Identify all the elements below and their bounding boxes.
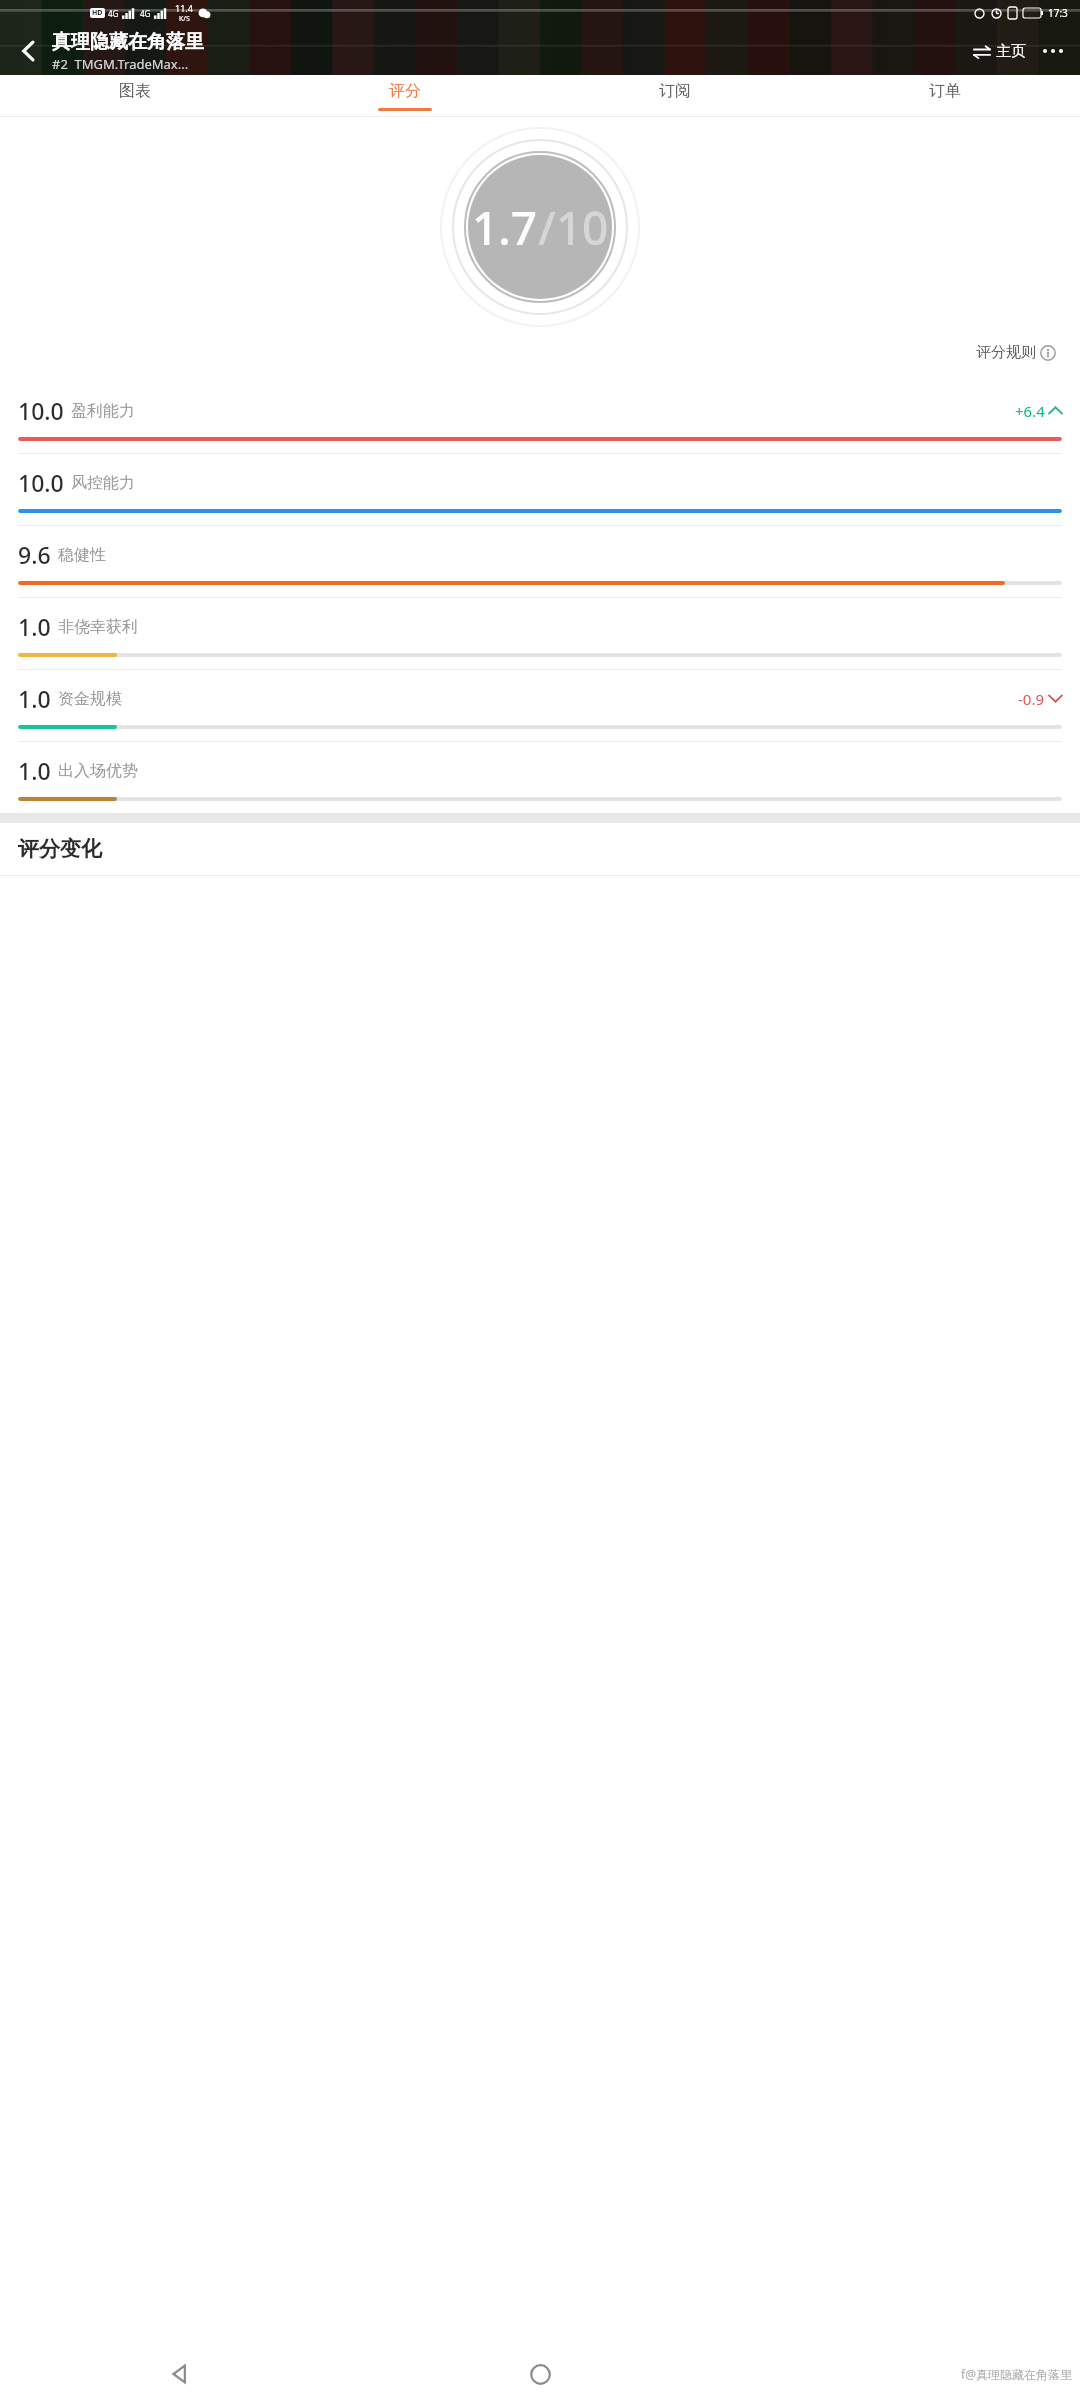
staticText: HD [92, 8, 103, 18]
staticText: 9.6 [18, 539, 51, 570]
staticText: 1.0 [18, 683, 51, 714]
staticText: 10.0 [18, 467, 64, 498]
button[interactable]: 主页 [969, 36, 1030, 67]
staticText: 非侥幸获利 [58, 617, 138, 637]
button[interactable]: 1.0 [0, 598, 1080, 669]
staticText: 风控能力 [71, 473, 135, 493]
staticText: 订阅 [659, 81, 691, 101]
staticText: 盈利能力 [71, 401, 135, 421]
staticText: 图表 [119, 81, 151, 101]
button[interactable]: 图表 [0, 75, 270, 117]
staticText: 4G [140, 8, 151, 19]
button[interactable]: Back [6, 28, 52, 74]
button[interactable]: 9.6 [0, 526, 1080, 597]
staticText: 主页 [996, 42, 1026, 61]
staticText: -0.9 [1018, 689, 1045, 709]
staticText: f@真理隐藏在角落里 [961, 2366, 1072, 2382]
staticText: #2 TMGM.TradeMax... [52, 55, 189, 73]
staticText: 1.0 [18, 611, 51, 642]
staticText: 评分变化 [18, 836, 102, 862]
button[interactable]: More options [1036, 34, 1070, 68]
staticText: 11.4 [175, 2, 193, 14]
staticText: K/S [179, 14, 190, 24]
staticText: 17:3 [1048, 6, 1068, 20]
staticText: 1.0 [18, 755, 51, 786]
staticText: 真理隐藏在角落里 [52, 30, 204, 54]
button[interactable]: 10.0 [0, 382, 1080, 453]
button[interactable]: 订单 [810, 75, 1080, 117]
staticText: 出入场优势 [58, 761, 138, 781]
button[interactable]: 1.0 [0, 670, 1080, 741]
staticText: 评分规则 [976, 343, 1036, 362]
staticText: 资金规模 [58, 689, 122, 709]
staticText: 评分 [389, 81, 421, 101]
staticText: 10.0 [18, 395, 64, 426]
button[interactable]: 1.0 [0, 742, 1080, 813]
button[interactable]: Recent apps [720, 2348, 1080, 2400]
staticText: 4G [108, 8, 119, 19]
button[interactable]: 评分规则 [970, 337, 1062, 368]
button[interactable]: 10.0 [0, 454, 1080, 525]
staticText: 1.7 [472, 196, 538, 259]
button[interactable]: 订阅 [540, 75, 810, 117]
staticText: 稳健性 [58, 545, 106, 565]
button[interactable]: Home [360, 2348, 720, 2400]
staticText: +6.4 [1015, 401, 1045, 421]
button[interactable]: Back [0, 2348, 360, 2400]
button[interactable]: 评分 [270, 75, 540, 117]
staticText: /10 [538, 196, 609, 259]
staticText: 订单 [929, 81, 961, 101]
